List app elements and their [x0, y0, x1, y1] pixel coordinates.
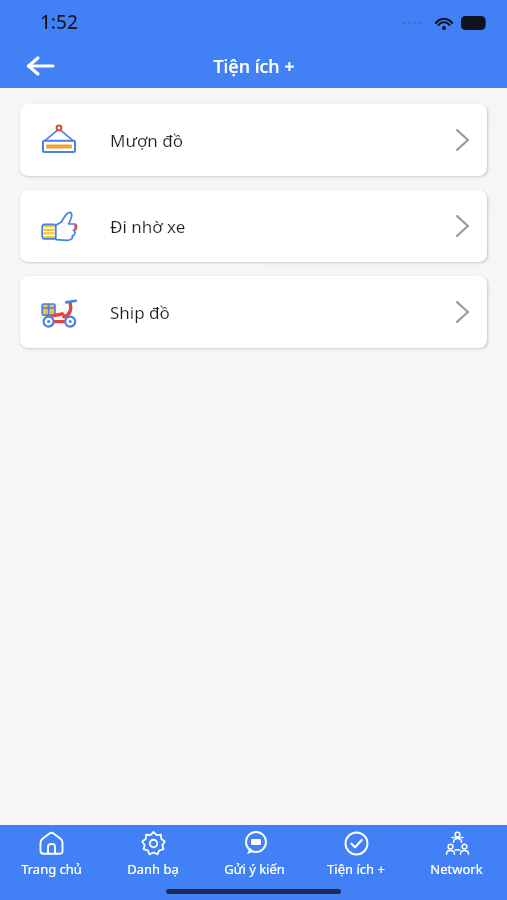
staticText: Mượn đồ [110, 129, 184, 152]
staticText: Tiện ích + [327, 860, 385, 878]
staticText: Đi nhờ xe [110, 215, 186, 238]
button[interactable]: Trang chủ [0, 825, 102, 883]
button[interactable]: Gửi ý kiến [204, 825, 305, 883]
staticText: Network [430, 860, 483, 878]
button[interactable]: Tiện ích + [305, 825, 406, 883]
staticText: 1:52 [40, 9, 78, 35]
staticText: Gửi ý kiến [224, 860, 285, 878]
button[interactable]: Network [406, 825, 507, 883]
staticText: Tiện ích + [213, 54, 295, 79]
button[interactable]: Mượn đồ [20, 104, 487, 176]
button[interactable]: Danh bạ [102, 825, 204, 883]
button[interactable]: Đi nhờ xe [20, 190, 487, 262]
button[interactable]: Back [18, 44, 62, 88]
staticText: Trang chủ [21, 860, 82, 878]
staticText: Danh bạ [127, 860, 179, 878]
staticText: Ship đồ [110, 301, 170, 324]
button[interactable]: Ship đồ [20, 276, 487, 348]
